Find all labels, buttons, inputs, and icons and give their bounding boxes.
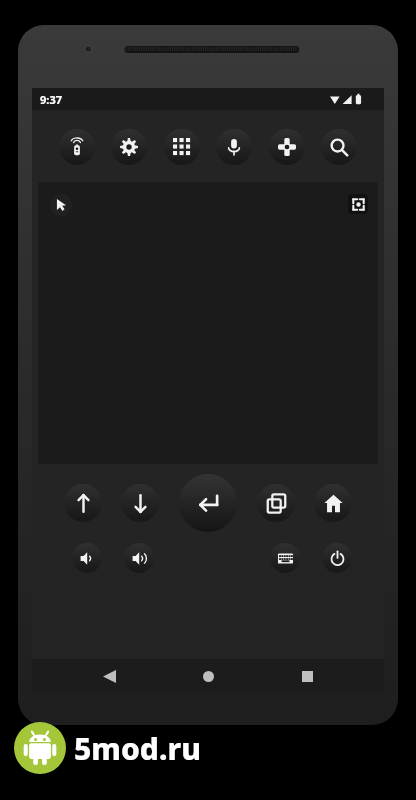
staticText: 5mod.ru [74, 728, 201, 769]
button[interactable]: Volume down [72, 543, 102, 573]
button[interactable]: Remote [59, 129, 95, 165]
button[interactable]: D-pad [269, 129, 305, 165]
button[interactable]: Center focus [348, 194, 368, 214]
button[interactable]: Volume up [124, 543, 154, 573]
button[interactable]: Settings [111, 129, 147, 165]
button[interactable]: Home [186, 659, 230, 693]
button[interactable]: Power [322, 543, 352, 573]
button[interactable]: Overview [285, 659, 329, 693]
button[interactable]: Pointer mode [50, 194, 72, 216]
button[interactable]: Enter [179, 474, 237, 532]
button[interactable]: Home [314, 484, 352, 522]
button[interactable]: Up [64, 484, 102, 522]
button[interactable]: Recents [257, 484, 295, 522]
button[interactable]: Voice [216, 129, 252, 165]
button[interactable]: Apps [164, 129, 200, 165]
button[interactable]: Pointer mode [38, 182, 378, 464]
button[interactable]: Keyboard [270, 543, 300, 573]
staticText: 9:37 [40, 92, 62, 107]
button[interactable]: Search [321, 129, 357, 165]
button[interactable]: Down [121, 484, 159, 522]
button[interactable]: Back [87, 659, 131, 693]
